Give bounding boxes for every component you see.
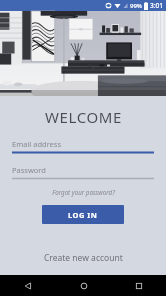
staticText: WELCOME xyxy=(45,107,122,127)
staticText: Email address xyxy=(12,139,62,149)
staticText: Password xyxy=(12,165,46,175)
staticText: Forgot your password? xyxy=(52,188,115,196)
button[interactable]: Password xyxy=(12,165,154,180)
staticText: Create new account xyxy=(44,252,123,264)
button[interactable]: LOG IN xyxy=(42,205,124,224)
button[interactable]: Home xyxy=(56,275,111,296)
staticText: 3:01 xyxy=(150,1,163,10)
staticText: LOG IN xyxy=(68,210,98,220)
button[interactable]: Email address xyxy=(12,139,154,154)
button[interactable]: Back xyxy=(0,275,56,296)
button[interactable]: Recents xyxy=(111,275,166,296)
button[interactable]: Create new account xyxy=(36,249,131,267)
staticText: 99% xyxy=(130,2,142,10)
button[interactable]: Forgot your password? xyxy=(48,187,119,197)
